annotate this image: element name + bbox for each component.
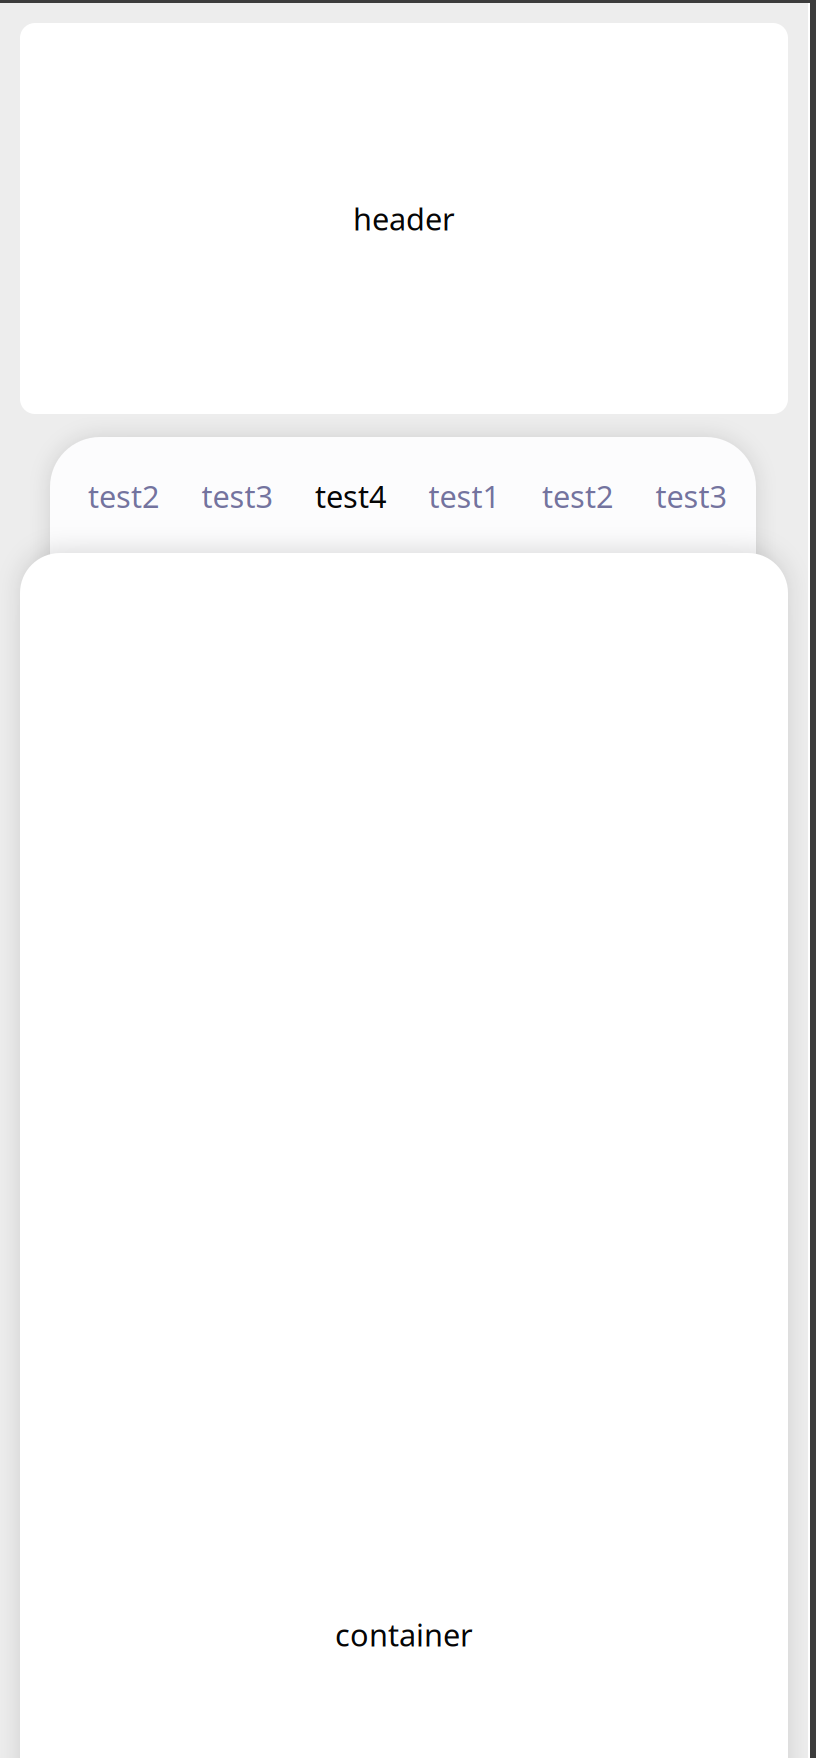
staticText: test3 (655, 476, 727, 516)
button[interactable]: test1 (408, 437, 521, 555)
button[interactable]: test3 (635, 437, 748, 555)
staticText: test2 (88, 476, 160, 516)
button[interactable]: test4 (294, 437, 408, 555)
staticText: test4 (315, 476, 387, 516)
staticText: test2 (542, 476, 614, 516)
button[interactable]: test2 (521, 437, 635, 555)
staticText: test3 (201, 476, 273, 516)
staticText: test1 (428, 476, 500, 516)
button[interactable]: test3 (181, 437, 294, 555)
staticText: container (335, 1614, 473, 1655)
staticText: header (353, 198, 455, 239)
button[interactable]: test2 (67, 437, 181, 555)
